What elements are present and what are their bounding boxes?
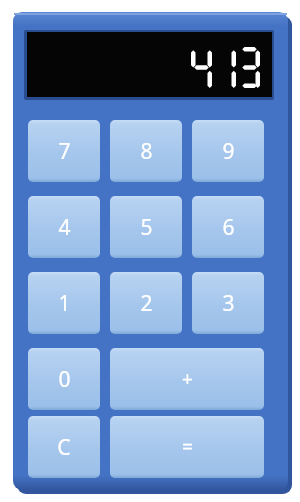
staticText: 4 <box>58 213 71 242</box>
button[interactable]: 7 <box>28 120 100 182</box>
button[interactable]: + <box>110 348 264 410</box>
button[interactable]: 3 <box>192 272 264 334</box>
staticText: = <box>182 434 193 460</box>
staticText: 3 <box>222 289 235 318</box>
staticText: C <box>57 433 71 462</box>
button[interactable]: 5 <box>110 196 182 258</box>
button[interactable]: = <box>110 416 264 478</box>
staticText: 5 <box>140 213 153 242</box>
button[interactable]: 2 <box>110 272 182 334</box>
button[interactable]: 6 <box>192 196 264 258</box>
button[interactable]: 0 <box>28 348 100 410</box>
staticText: 9 <box>222 137 235 166</box>
staticText: 2 <box>140 289 153 318</box>
button[interactable]: 9 <box>192 120 264 182</box>
staticText: 0 <box>58 365 71 394</box>
staticText: 7 <box>58 137 71 166</box>
button[interactable]: 1 <box>28 272 100 334</box>
button[interactable]: 8 <box>110 120 182 182</box>
staticText: + <box>182 366 193 392</box>
staticText: 8 <box>140 137 153 166</box>
button[interactable]: C <box>28 416 100 478</box>
staticText: 1 <box>58 289 71 318</box>
staticText: 6 <box>222 213 235 242</box>
button[interactable]: 4 <box>28 196 100 258</box>
